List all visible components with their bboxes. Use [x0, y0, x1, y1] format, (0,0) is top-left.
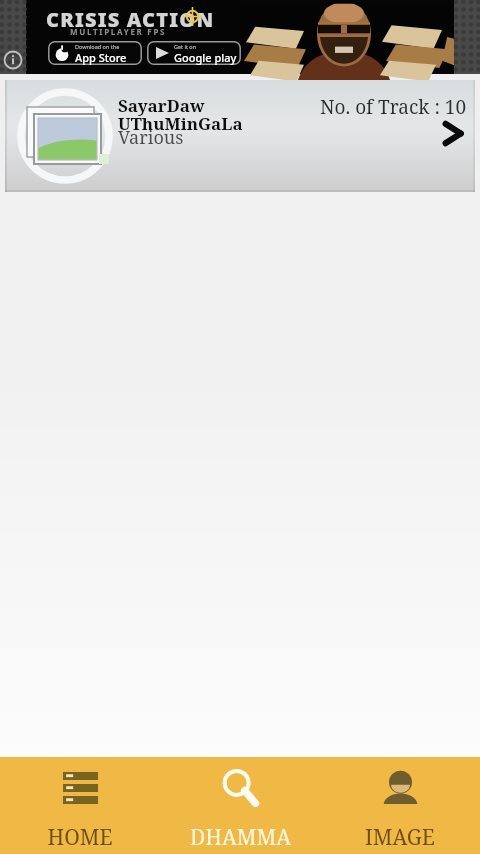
staticText: MULTIPLAYER FPS	[70, 26, 167, 37]
other: Image	[383, 772, 418, 804]
button[interactable]: Search	[160, 757, 320, 854]
button[interactable]: SayarDaw	[5, 80, 475, 192]
staticText: DHAMMA	[190, 823, 291, 852]
staticText: Get it on	[174, 43, 197, 50]
other: Search	[223, 772, 258, 804]
staticText: CRISIS ACTION	[46, 6, 215, 33]
staticText: Various	[118, 125, 184, 150]
staticText: App Store	[75, 50, 127, 65]
other: Home	[63, 772, 98, 804]
staticText: UThuMinGaLa	[118, 112, 243, 135]
staticText: Google play	[174, 50, 237, 65]
button[interactable]: Advertisement	[0, 0, 480, 74]
staticText: No. of Track : 10	[320, 94, 466, 120]
staticText: SayarDaw	[118, 94, 205, 117]
staticText: HOME	[47, 823, 113, 852]
staticText: IMAGE	[365, 823, 435, 852]
button[interactable]: Image	[320, 757, 480, 854]
staticText: Download on the	[75, 43, 120, 50]
button[interactable]: Home	[0, 757, 160, 854]
